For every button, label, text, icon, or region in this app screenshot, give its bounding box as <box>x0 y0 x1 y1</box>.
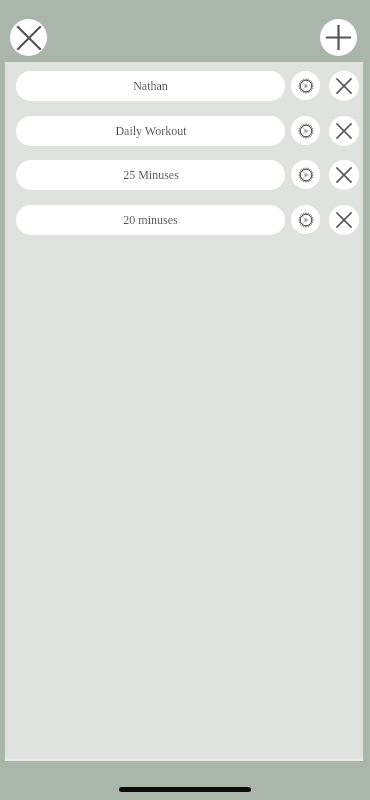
button[interactable]: Settings <box>291 160 320 189</box>
button[interactable]: Delete <box>329 160 359 190</box>
staticText: Nathan <box>133 79 168 92</box>
staticText: Daily Workout <box>115 124 187 137</box>
button[interactable]: Settings <box>291 116 320 145</box>
button[interactable]: Settings <box>291 71 320 100</box>
staticText: 20 minuses <box>123 213 178 226</box>
button[interactable]: Delete <box>329 71 359 101</box>
button[interactable]: Settings <box>291 205 320 234</box>
button[interactable]: 25 Minuses <box>16 160 285 190</box>
button[interactable]: 20 minuses <box>16 205 285 235</box>
staticText: 25 Minuses <box>123 168 179 181</box>
button[interactable]: Close <box>10 19 47 56</box>
button[interactable]: Add <box>320 19 357 56</box>
button[interactable]: Delete <box>329 116 359 146</box>
button[interactable]: Nathan <box>16 71 285 101</box>
button[interactable]: Delete <box>329 205 359 235</box>
button[interactable]: Daily Workout <box>16 116 285 146</box>
